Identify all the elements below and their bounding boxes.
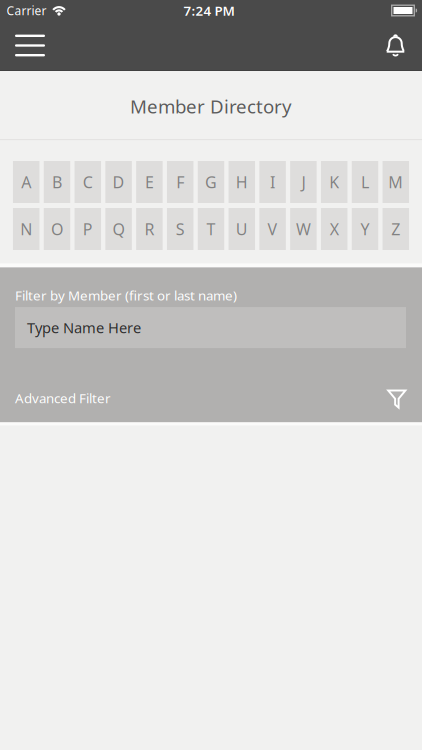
button[interactable]: L bbox=[352, 161, 378, 203]
button[interactable]: G bbox=[198, 161, 224, 203]
staticText: Filter by Member (first or last name) bbox=[15, 286, 237, 304]
button[interactable]: P bbox=[75, 208, 101, 250]
staticText: Advanced Filter bbox=[15, 389, 111, 407]
staticText: U bbox=[236, 218, 248, 240]
button[interactable]: Advanced Filter bbox=[0, 388, 422, 408]
staticText: D bbox=[113, 171, 125, 193]
staticText: X bbox=[330, 218, 339, 240]
button[interactable]: J bbox=[290, 161, 317, 203]
button[interactable]: Type Name Here bbox=[15, 307, 406, 348]
button[interactable]: C bbox=[75, 161, 101, 203]
button[interactable]: S bbox=[167, 208, 193, 250]
button[interactable]: H bbox=[229, 161, 255, 203]
staticText: Z bbox=[391, 218, 400, 240]
button[interactable]: Menu bbox=[0, 25, 45, 66]
staticText: O bbox=[51, 218, 63, 240]
staticText: K bbox=[329, 171, 339, 193]
button[interactable]: T bbox=[198, 208, 224, 250]
staticText: S bbox=[176, 218, 185, 240]
staticText: R bbox=[144, 218, 154, 240]
button[interactable]: R bbox=[136, 208, 163, 250]
button[interactable]: Notifications bbox=[384, 33, 422, 57]
button[interactable]: Q bbox=[105, 208, 132, 250]
staticText: P bbox=[83, 218, 93, 240]
button[interactable]: Y bbox=[352, 208, 378, 250]
button[interactable]: V bbox=[259, 208, 286, 250]
staticText: Type Name Here bbox=[27, 318, 141, 337]
staticText: Q bbox=[113, 218, 125, 240]
staticText: W bbox=[296, 218, 311, 240]
button[interactable]: M bbox=[383, 161, 409, 203]
staticText: J bbox=[301, 171, 305, 193]
button[interactable]: A bbox=[13, 161, 39, 203]
button[interactable]: O bbox=[44, 208, 70, 250]
staticText: G bbox=[205, 171, 217, 193]
staticText: L bbox=[361, 171, 369, 193]
staticText: E bbox=[145, 171, 154, 193]
staticText: I bbox=[270, 171, 275, 193]
button[interactable]: W bbox=[290, 208, 317, 250]
button[interactable]: B bbox=[44, 161, 70, 203]
staticText: N bbox=[20, 218, 32, 240]
button[interactable]: I bbox=[259, 161, 286, 203]
button[interactable]: D bbox=[105, 161, 132, 203]
staticText: C bbox=[83, 171, 93, 193]
button[interactable]: K bbox=[321, 161, 347, 203]
staticText: Carrier bbox=[6, 2, 46, 18]
staticText: B bbox=[52, 171, 62, 193]
staticText: 7:24 PM bbox=[183, 2, 234, 19]
button[interactable]: F bbox=[167, 161, 193, 203]
staticText: A bbox=[21, 171, 31, 193]
button[interactable]: X bbox=[321, 208, 347, 250]
button[interactable]: U bbox=[229, 208, 255, 250]
staticText: F bbox=[176, 171, 184, 193]
button[interactable]: N bbox=[13, 208, 39, 250]
staticText: M bbox=[388, 171, 403, 193]
staticText: H bbox=[236, 171, 248, 193]
staticText: Y bbox=[360, 218, 369, 240]
button[interactable]: Z bbox=[383, 208, 409, 250]
staticText: V bbox=[268, 218, 278, 240]
staticText: Member Directory bbox=[130, 94, 292, 119]
staticText: T bbox=[206, 218, 215, 240]
button[interactable]: E bbox=[136, 161, 163, 203]
